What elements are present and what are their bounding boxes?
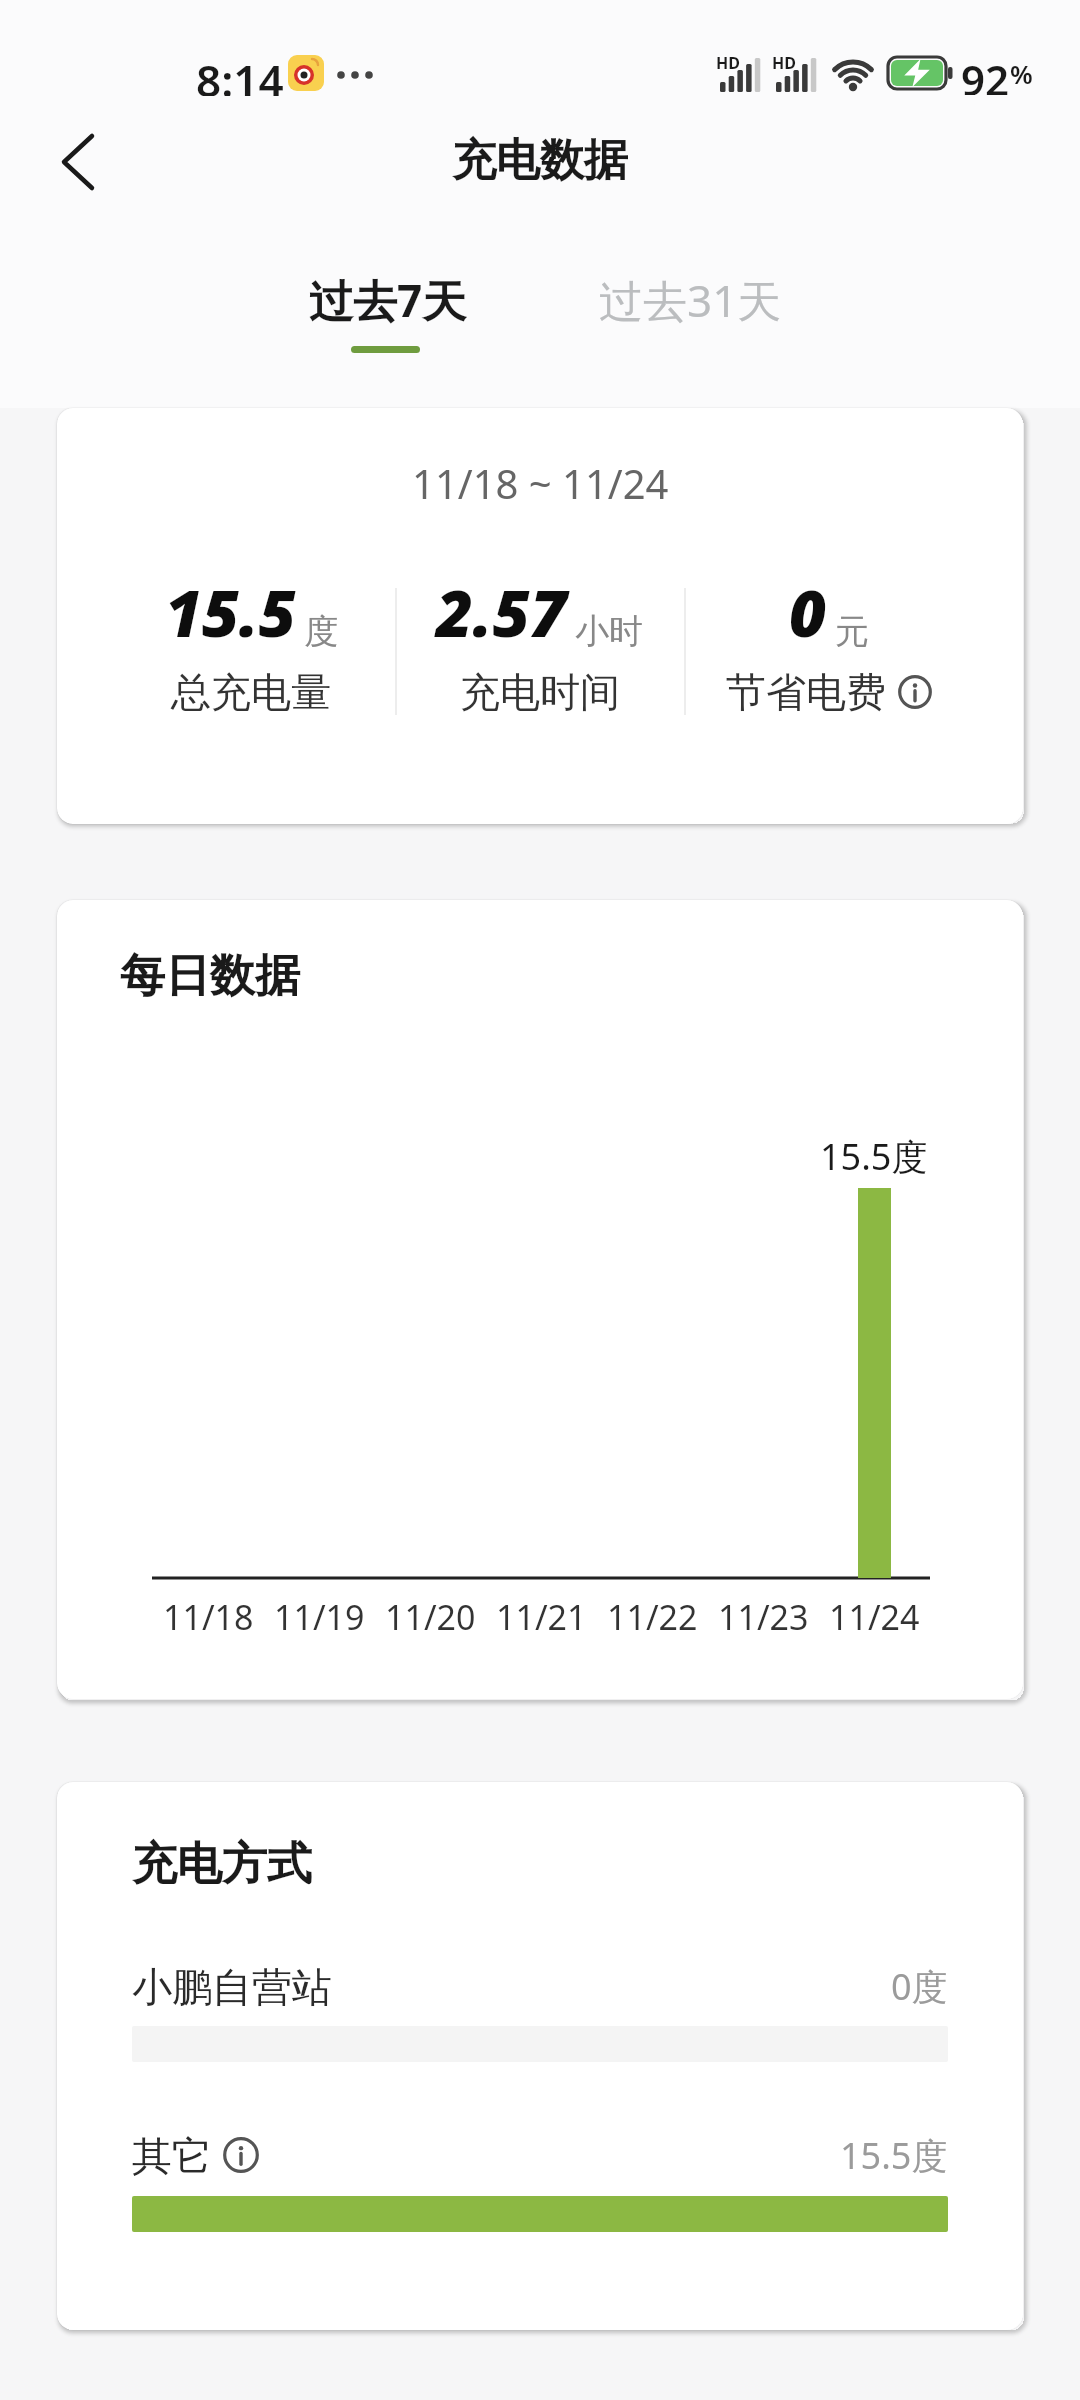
button[interactable]: 过去7天	[238, 270, 538, 380]
staticText: 总充电量	[171, 667, 331, 717]
staticText: 其它	[132, 2131, 212, 2179]
staticText: 充电方式	[132, 1836, 312, 1893]
staticText: 过去7天	[309, 270, 467, 326]
staticText: 充电时间	[460, 667, 620, 717]
staticText: 92	[961, 51, 1010, 95]
staticText: 15.5度	[820, 1132, 928, 1181]
button[interactable]: 其它	[132, 2131, 948, 2179]
staticText: 11/23	[718, 1594, 809, 1640]
staticText: 15.5	[165, 569, 296, 656]
staticText: 度	[304, 610, 338, 653]
staticText: %	[1010, 56, 1033, 91]
staticText: 15.5度	[840, 2131, 948, 2179]
button[interactable]	[223, 2137, 259, 2173]
staticText: 0度	[891, 1962, 948, 2010]
staticText: 节省电费	[726, 667, 886, 717]
button[interactable]: 小鹏自营站	[132, 1962, 948, 2010]
staticText: 11/24	[829, 1594, 920, 1640]
staticText: 11/20	[385, 1594, 476, 1640]
staticText: 11/18 ~ 11/24	[412, 456, 669, 504]
staticText: 每日数据	[120, 948, 300, 1005]
staticText: 小鹏自营站	[132, 1962, 332, 2010]
staticText: 充电数据	[452, 133, 628, 185]
button[interactable]	[40, 130, 110, 194]
staticText: 11/22	[607, 1594, 698, 1640]
staticText: 8:14	[196, 50, 284, 96]
button[interactable]	[898, 675, 932, 709]
staticText: 11/21	[496, 1594, 587, 1640]
staticText: 0	[789, 569, 827, 656]
staticText: 11/19	[274, 1594, 365, 1640]
staticText: 元	[835, 610, 869, 653]
staticText: 过去31天	[599, 270, 782, 326]
staticText: 2.57	[436, 569, 567, 656]
staticText: HD	[716, 52, 740, 74]
staticText: HD	[772, 52, 796, 74]
button[interactable]: 过去31天	[540, 270, 840, 380]
staticText: 11/18	[163, 1594, 254, 1640]
staticText: 小时	[575, 610, 643, 653]
